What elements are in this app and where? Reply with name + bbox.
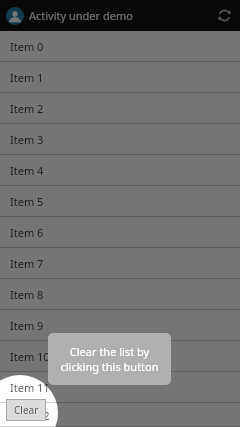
staticText: Item 5	[10, 194, 44, 209]
staticText: Item 6	[10, 225, 44, 240]
staticText: Clear	[14, 403, 39, 417]
staticText: Item 1	[10, 70, 44, 85]
button[interactable]: Item 12	[0, 403, 240, 427]
staticText: Item 12	[10, 408, 50, 423]
staticText: Activity under demo	[29, 8, 133, 23]
button[interactable]: Item 3	[0, 124, 240, 155]
button[interactable]: Item 5	[0, 186, 240, 217]
button[interactable]: Item 9	[0, 310, 240, 341]
staticText: Item 4	[10, 163, 44, 178]
staticText: Clear the list by clicking this button	[56, 344, 163, 374]
staticText: Item 11	[10, 380, 50, 395]
button[interactable]: Item 8	[0, 279, 240, 310]
button[interactable]: Item 0	[0, 31, 240, 62]
staticText: Item 2	[10, 101, 44, 116]
staticText: Item 9	[10, 318, 44, 333]
button[interactable]: Item 2	[0, 93, 240, 124]
button[interactable]: Item 11	[0, 372, 240, 403]
button[interactable]: Refresh	[209, 0, 240, 31]
button[interactable]: Clear	[6, 399, 46, 421]
staticText: Item 10	[10, 349, 50, 364]
staticText: Item 3	[10, 132, 44, 147]
staticText: Item 8	[10, 287, 44, 302]
button[interactable]: Item 4	[0, 155, 240, 186]
staticText: Item 7	[10, 256, 44, 271]
button[interactable]: Item 6	[0, 217, 240, 248]
staticText: Item 0	[10, 39, 44, 54]
button[interactable]: Item 7	[0, 248, 240, 279]
button[interactable]: Item 1	[0, 62, 240, 93]
button[interactable]: Clear the list by clicking this button	[48, 333, 171, 385]
button[interactable]: Item 10	[0, 341, 240, 372]
